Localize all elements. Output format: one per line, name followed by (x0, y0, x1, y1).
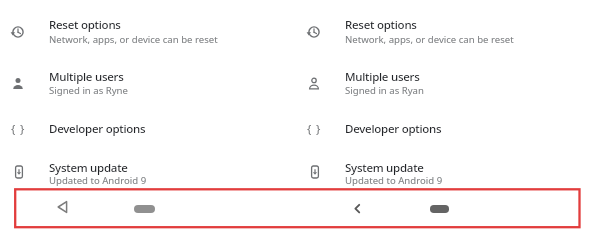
staticText: Signed in as Ryne (49, 84, 128, 97)
staticText: Signed in as Ryan (345, 84, 424, 97)
staticText: System update (345, 160, 424, 176)
button[interactable]: System update (0, 148, 290, 186)
staticText: Multiple users (345, 69, 420, 85)
staticText: Developer options (49, 121, 146, 137)
staticText: { } (11, 121, 26, 137)
staticText: Network, apps, or device can be reset (345, 33, 514, 46)
staticText: Reset options (345, 17, 417, 33)
button[interactable]: Reset options (0, 12, 290, 56)
button[interactable] (350, 199, 366, 215)
staticText: { } (307, 121, 322, 137)
staticText: Multiple users (49, 69, 124, 85)
staticText: Updated to Android 9 (345, 174, 443, 187)
button[interactable] (430, 205, 449, 213)
staticText: Developer options (345, 121, 442, 137)
staticText: Reset options (49, 17, 121, 33)
button[interactable]: { } (0, 112, 290, 144)
button[interactable]: Reset options (296, 12, 586, 56)
staticText: System update (49, 160, 128, 176)
button[interactable]: { } (296, 112, 586, 144)
button[interactable]: System update (296, 148, 586, 186)
button[interactable]: Multiple users (296, 62, 586, 104)
button[interactable] (53, 197, 73, 217)
staticText: Network, apps, or device can be reset (49, 33, 218, 46)
button[interactable] (134, 205, 155, 213)
staticText: Updated to Android 9 (49, 174, 147, 187)
button[interactable]: Multiple users (0, 62, 290, 104)
